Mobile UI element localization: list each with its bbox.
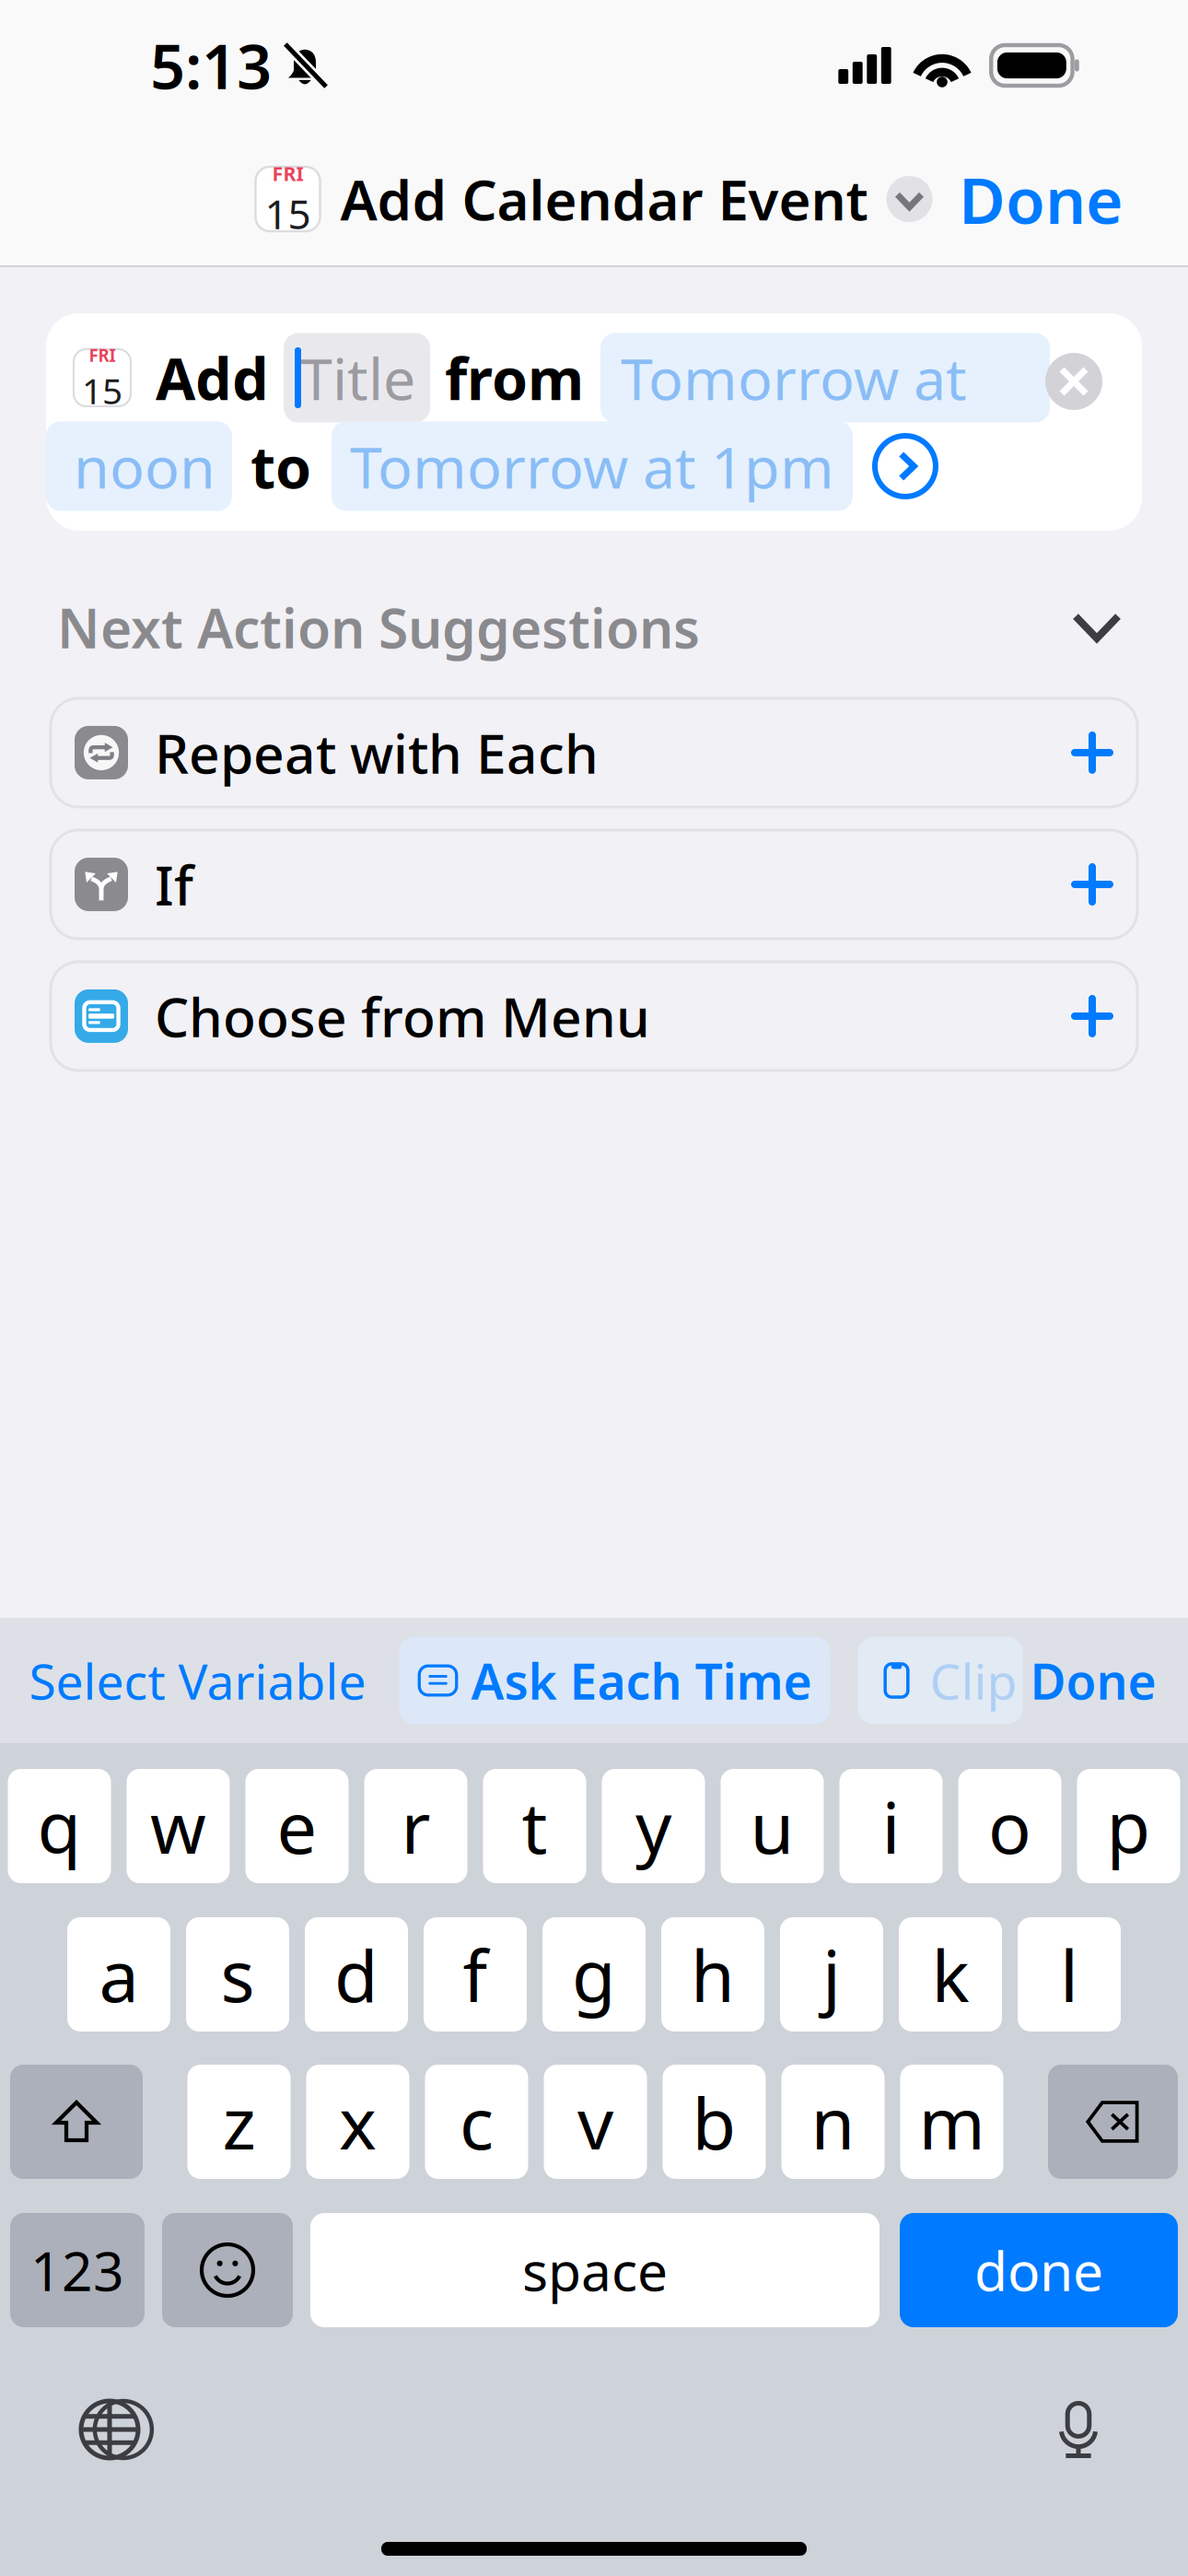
staticText: f: [463, 1927, 488, 2022]
staticText: noon: [74, 428, 215, 505]
button[interactable]: d: [305, 1917, 408, 2032]
staticText: e: [277, 1779, 317, 1873]
staticText: Done: [1030, 1648, 1156, 1713]
staticText: Title: [300, 339, 415, 416]
staticText: x: [339, 2075, 377, 2169]
button[interactable]: x: [306, 2065, 409, 2179]
staticText: Next Action Suggestions: [57, 591, 700, 663]
staticText: Tomorrow at: [621, 339, 967, 416]
button[interactable]: Show more: [875, 436, 936, 497]
button[interactable]: w: [127, 1769, 230, 1883]
staticText: y: [635, 1779, 671, 1873]
staticText: d: [334, 1927, 379, 2022]
button[interactable]: h: [661, 1917, 764, 2032]
staticText: k: [932, 1927, 969, 2022]
staticText: from: [445, 339, 584, 416]
staticText: o: [988, 1779, 1031, 1873]
staticText: m: [919, 2075, 985, 2169]
staticText: If: [155, 849, 193, 920]
staticText: FRI: [89, 344, 116, 367]
staticText: n: [811, 2075, 855, 2169]
staticText: Tomorrow at 1pm: [350, 428, 834, 505]
staticText: c: [460, 2075, 494, 2169]
button[interactable]: Choose from Menu: [51, 962, 1137, 1070]
button[interactable]: Clip: [858, 1637, 1023, 1724]
button[interactable]: p: [1077, 1769, 1180, 1883]
button[interactable]: If: [51, 830, 1137, 939]
staticText: FRI: [272, 160, 303, 186]
staticText: t: [522, 1779, 547, 1873]
button[interactable]: q: [8, 1769, 111, 1883]
staticText: Ask Each Time: [471, 1648, 812, 1713]
button[interactable]: f: [424, 1917, 527, 2032]
button[interactable]: s: [186, 1917, 289, 2032]
button[interactable]: l: [1018, 1917, 1121, 2032]
staticText: b: [692, 2075, 736, 2169]
button[interactable]: y: [602, 1769, 705, 1883]
button[interactable]: b: [663, 2065, 766, 2179]
staticText: space: [522, 2234, 668, 2306]
staticText: q: [37, 1779, 82, 1873]
staticText: Repeat with Each: [155, 717, 599, 789]
button[interactable]: i: [839, 1769, 943, 1883]
button[interactable]: t: [483, 1769, 586, 1883]
button[interactable]: Emoji: [162, 2213, 293, 2327]
staticText: u: [750, 1779, 794, 1873]
staticText: a: [99, 1927, 139, 2022]
button[interactable]: Dictate: [1037, 2388, 1120, 2471]
staticText: Select Variable: [29, 1648, 366, 1713]
button[interactable]: Shift: [10, 2065, 143, 2179]
button[interactable]: k: [899, 1917, 1002, 2032]
staticText: Choose from Menu: [155, 980, 650, 1052]
button[interactable]: done: [900, 2213, 1178, 2327]
staticText: done: [974, 2234, 1103, 2306]
button[interactable]: Done: [1030, 1631, 1156, 1730]
button[interactable]: j: [780, 1917, 883, 2032]
button[interactable]: Delete: [1048, 2065, 1178, 2179]
button[interactable]: a: [67, 1917, 170, 2032]
button[interactable]: r: [364, 1769, 467, 1883]
button[interactable]: Ask Each Time: [399, 1637, 830, 1724]
button[interactable]: Switch keyboard: [68, 2388, 151, 2471]
staticText: h: [691, 1927, 735, 2022]
button[interactable]: e: [245, 1769, 349, 1883]
staticText: Clip: [930, 1648, 1017, 1713]
staticText: z: [222, 2075, 256, 2169]
button[interactable]: Collapse suggestions: [1063, 603, 1131, 651]
staticText: 5:13: [150, 25, 272, 106]
button[interactable]: Remove action: [1045, 353, 1102, 410]
staticText: Add Calendar Event: [340, 162, 868, 236]
staticText: to: [250, 428, 311, 505]
button[interactable]: c: [425, 2065, 528, 2179]
staticText: r: [401, 1779, 431, 1873]
button[interactable]: Repeat with Each: [51, 698, 1137, 807]
button[interactable]: space: [310, 2213, 879, 2327]
staticText: p: [1106, 1779, 1151, 1873]
staticText: j: [822, 1927, 841, 2022]
staticText: Add: [156, 339, 269, 416]
button[interactable]: n: [781, 2065, 885, 2179]
staticText: 123: [30, 2234, 124, 2306]
staticText: 15: [265, 186, 311, 240]
button[interactable]: Done: [940, 142, 1142, 256]
staticText: v: [577, 2075, 613, 2169]
button[interactable]: z: [187, 2065, 291, 2179]
staticText: 15: [82, 367, 122, 414]
button[interactable]: 123: [10, 2213, 145, 2327]
button[interactable]: o: [958, 1769, 1061, 1883]
button[interactable]: v: [544, 2065, 647, 2179]
button[interactable]: g: [542, 1917, 646, 2032]
button[interactable]: FRI: [256, 162, 932, 236]
staticText: g: [572, 1927, 616, 2022]
staticText: s: [221, 1927, 255, 2022]
staticText: i: [882, 1779, 900, 1873]
staticText: l: [1060, 1927, 1078, 2022]
staticText: Done: [959, 157, 1124, 241]
button[interactable]: m: [900, 2065, 1003, 2179]
staticText: w: [150, 1779, 206, 1873]
button[interactable]: Select Variable: [29, 1631, 366, 1730]
button[interactable]: u: [721, 1769, 824, 1883]
